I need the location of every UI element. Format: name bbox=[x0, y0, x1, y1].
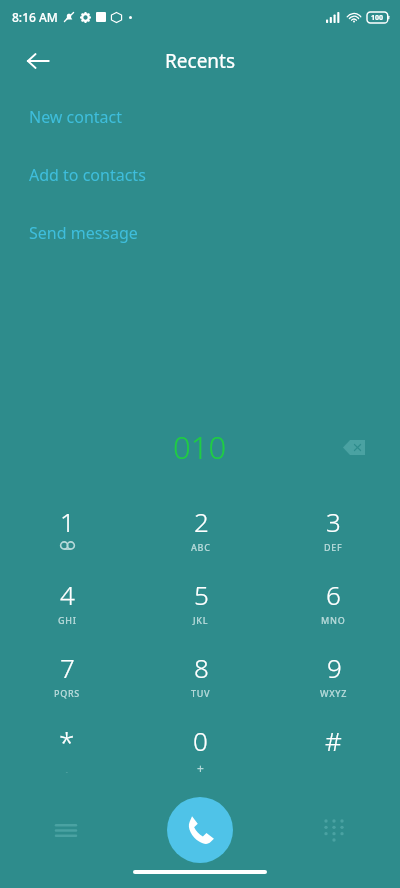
staticText: 8:16 AM bbox=[12, 9, 58, 25]
staticText: MNO bbox=[321, 614, 346, 626]
staticText: + bbox=[197, 760, 205, 772]
staticText: * bbox=[59, 723, 75, 761]
staticText: ABC bbox=[191, 541, 211, 553]
button[interactable]: 5 bbox=[134, 571, 267, 644]
staticText: JKL bbox=[193, 614, 209, 626]
staticText: New contact bbox=[29, 106, 123, 128]
staticText: , bbox=[65, 761, 69, 773]
staticText: 8 bbox=[194, 650, 209, 685]
staticText: 3 bbox=[326, 504, 341, 539]
staticText: 2 bbox=[194, 504, 209, 539]
button[interactable]: 7 bbox=[0, 644, 134, 717]
button[interactable]: Call log bbox=[44, 808, 88, 852]
staticText: Send message bbox=[29, 222, 138, 244]
staticText: # bbox=[325, 723, 342, 758]
button[interactable]: 8 bbox=[134, 644, 267, 717]
staticText: 100 bbox=[371, 13, 384, 23]
button[interactable]: New contact bbox=[0, 104, 400, 130]
staticText: DEF bbox=[324, 541, 343, 553]
staticText: PQRS bbox=[54, 687, 80, 699]
staticText: 0 bbox=[193, 723, 208, 758]
button[interactable]: # bbox=[267, 717, 400, 790]
button[interactable]: Send message bbox=[0, 220, 400, 246]
staticText: GHI bbox=[58, 614, 77, 626]
button[interactable]: Backspace bbox=[334, 427, 374, 467]
button[interactable]: Back bbox=[16, 39, 60, 83]
staticText: 4 bbox=[60, 577, 75, 612]
staticText: 9 bbox=[327, 650, 342, 685]
button[interactable]: 2 bbox=[134, 498, 267, 571]
button[interactable]: 0 bbox=[134, 717, 267, 790]
button[interactable]: 4 bbox=[0, 571, 134, 644]
button[interactable]: * bbox=[0, 717, 134, 790]
button[interactable]: 9 bbox=[267, 644, 400, 717]
button[interactable]: 6 bbox=[267, 571, 400, 644]
button[interactable]: Call bbox=[167, 797, 233, 863]
staticText: WXYZ bbox=[320, 687, 348, 699]
staticText: TUV bbox=[191, 687, 211, 699]
staticText: 010 bbox=[173, 426, 227, 468]
staticText: Add to contacts bbox=[29, 164, 146, 186]
button[interactable]: Dialpad bbox=[312, 808, 356, 852]
staticText: Recents bbox=[165, 48, 236, 74]
staticText: 1 bbox=[60, 504, 75, 539]
staticText: 5 bbox=[194, 577, 209, 612]
button[interactable]: 1 bbox=[0, 498, 134, 571]
button[interactable]: 3 bbox=[267, 498, 400, 571]
staticText: 6 bbox=[326, 577, 341, 612]
staticText: 7 bbox=[60, 650, 75, 685]
button[interactable]: Add to contacts bbox=[0, 162, 400, 188]
